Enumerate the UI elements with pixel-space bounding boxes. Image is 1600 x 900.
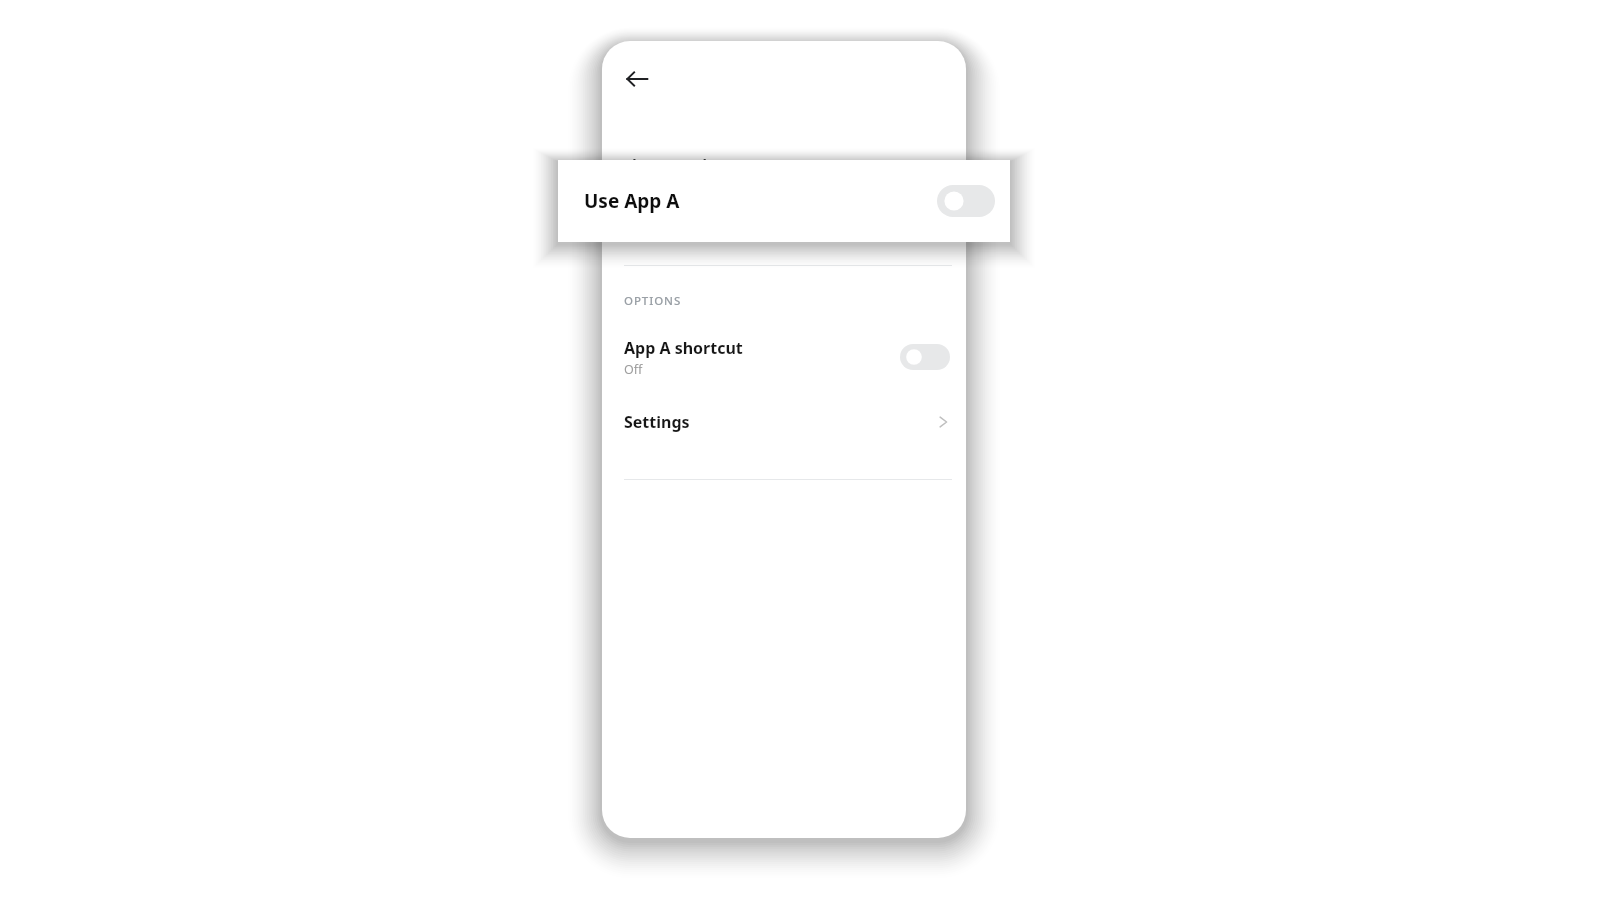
staticText: Settings [624, 411, 690, 433]
button[interactable]: Use App A [558, 160, 1010, 242]
button[interactable]: Settings [602, 392, 966, 452]
button[interactable]: Back [613, 55, 661, 103]
staticText: App A shortcut [624, 337, 743, 359]
staticText: Use App A [584, 188, 680, 214]
staticText: Off [624, 361, 643, 378]
staticText: OPTIONS [624, 293, 682, 309]
button[interactable]: Toggle, off [900, 344, 950, 370]
staticText: App A [624, 148, 715, 194]
button[interactable]: Toggle, off [937, 185, 995, 217]
button[interactable]: App A shortcut [602, 326, 966, 388]
